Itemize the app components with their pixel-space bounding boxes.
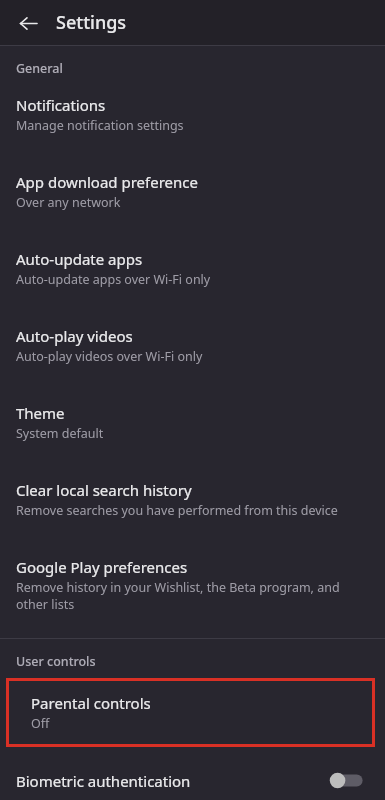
staticText: Remove history in your Wishlist, the Bet… <box>16 579 369 612</box>
button[interactable]: Parental controls <box>15 683 374 742</box>
staticText: System default <box>16 425 104 442</box>
button[interactable]: Theme <box>0 393 385 452</box>
staticText: Biometric authentication <box>16 771 191 790</box>
button[interactable]: Auto-update apps <box>0 239 385 298</box>
staticText: Auto-play videos over Wi-Fi only <box>16 348 203 365</box>
staticText: General <box>16 60 63 77</box>
staticText: Off <box>31 715 50 732</box>
button[interactable]: Auto-play videos <box>0 316 385 375</box>
staticText: Parental controls <box>31 693 151 713</box>
staticText: User controls <box>16 653 96 670</box>
button[interactable]: Google Play preferences <box>0 547 385 622</box>
staticText: Clear local search history <box>16 480 192 500</box>
button[interactable]: Notifications <box>0 85 385 144</box>
staticText: Settings <box>56 10 127 35</box>
staticText: Auto-update apps <box>16 249 143 269</box>
button[interactable]: Biometric authentication <box>0 761 385 800</box>
button[interactable]: Back <box>12 7 44 39</box>
staticText: Auto-update apps over Wi-Fi only <box>16 271 211 288</box>
staticText: Manage notification settings <box>16 117 184 134</box>
staticText: Notifications <box>16 95 106 115</box>
staticText: Remove searches you have performed from … <box>16 502 338 519</box>
staticText: Theme <box>16 403 65 423</box>
staticText: Google Play preferences <box>16 557 188 577</box>
button[interactable]: Clear local search history <box>0 470 385 529</box>
staticText: App download preference <box>16 172 198 192</box>
button[interactable]: App download preference <box>0 162 385 221</box>
staticText: Over any network <box>16 194 121 211</box>
staticText: Auto-play videos <box>16 326 133 346</box>
button[interactable]: Biometric authentication toggle <box>329 771 369 790</box>
